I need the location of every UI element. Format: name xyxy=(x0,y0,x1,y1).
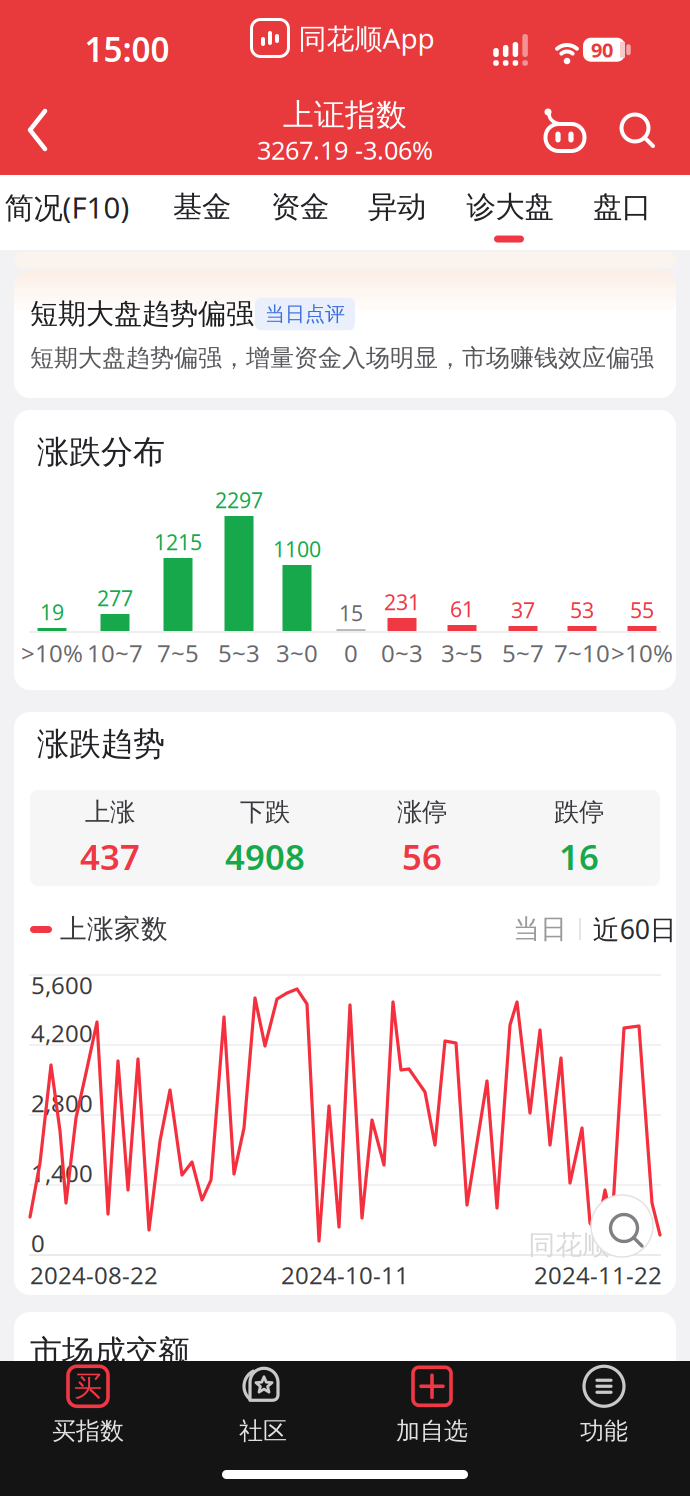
staticText: >10% xyxy=(611,637,673,669)
staticText: 53 xyxy=(570,596,594,624)
staticText: >10% xyxy=(21,637,83,669)
staticText: 7~5 xyxy=(157,637,199,669)
button[interactable]: 功能 xyxy=(572,1364,636,1446)
staticText: 1,400 xyxy=(31,1157,93,1189)
staticText: 同花顺App xyxy=(298,19,434,57)
staticText: 下跌 xyxy=(240,796,290,827)
staticText: 437 xyxy=(80,833,140,879)
staticText: 2297 xyxy=(215,486,263,514)
staticText: 90 xyxy=(591,36,613,63)
staticText: 上涨 xyxy=(85,796,135,827)
staticText: 近60日 xyxy=(593,911,677,947)
button[interactable]: 盘口 xyxy=(593,175,651,239)
staticText: 15 xyxy=(339,599,363,627)
staticText: 10~7 xyxy=(87,637,143,669)
button[interactable] xyxy=(619,112,657,150)
staticText: 2,800 xyxy=(31,1087,93,1119)
staticText: 加自选 xyxy=(396,1416,468,1446)
button[interactable]: 基金 xyxy=(173,175,231,239)
staticText: 61 xyxy=(450,595,474,623)
staticText: 1215 xyxy=(154,528,202,556)
button[interactable] xyxy=(539,107,591,155)
staticText: 4,200 xyxy=(31,1017,93,1049)
button[interactable]: 当日点评 xyxy=(255,298,355,330)
button[interactable]: 买 xyxy=(44,1364,132,1446)
staticText: 19 xyxy=(40,598,64,626)
button[interactable]: 加自选 xyxy=(388,1364,476,1446)
staticText: 5,600 xyxy=(31,969,93,1001)
staticText: 当日点评 xyxy=(265,302,345,326)
staticText: 买 xyxy=(74,1369,102,1403)
staticText: 277 xyxy=(97,584,133,612)
staticText: 买指数 xyxy=(52,1416,124,1446)
button[interactable]: 诊大盘 xyxy=(466,175,553,239)
button[interactable]: 社区 xyxy=(231,1364,295,1446)
staticText: 基金 xyxy=(173,189,231,225)
staticText: 资金 xyxy=(271,189,329,225)
staticText: 2024-10-11 xyxy=(281,1259,409,1291)
staticText: 上证指数 xyxy=(283,96,407,134)
staticText: 社区 xyxy=(239,1416,287,1446)
button[interactable]: 简况(F10) xyxy=(4,173,129,240)
button[interactable]: 当日 xyxy=(513,911,677,947)
staticText: 37 xyxy=(511,596,535,624)
staticText: 5~3 xyxy=(218,637,260,669)
staticText: 0 xyxy=(344,637,358,669)
staticText: 4908 xyxy=(225,833,305,879)
staticText: 0~3 xyxy=(381,637,423,669)
staticText: 3~5 xyxy=(441,637,483,669)
button[interactable]: 同花顺App xyxy=(251,19,434,57)
staticText: 2024-08-22 xyxy=(30,1259,158,1291)
staticText: 诊大盘 xyxy=(466,189,553,225)
button[interactable] xyxy=(28,109,48,151)
staticText: 市场成交额 xyxy=(30,1332,190,1372)
staticText: 16 xyxy=(559,833,599,879)
staticText: 涨跌趋势 xyxy=(37,724,165,764)
staticText: 简况(F10) xyxy=(4,187,129,226)
staticText: 涨停 xyxy=(397,796,447,827)
staticText: 1100 xyxy=(273,535,321,563)
staticText: 3267.19 -3.06% xyxy=(257,133,433,167)
staticText: 0 xyxy=(31,1227,45,1259)
button[interactable] xyxy=(591,1195,653,1257)
staticText: 异动 xyxy=(368,189,426,225)
staticText: 15:00 xyxy=(84,27,169,71)
staticText: 当日 xyxy=(513,913,567,945)
staticText: 跌停 xyxy=(554,796,604,827)
staticText: 短期大盘趋势偏强，增量资金入场明显，市场赚钱效应偏强 xyxy=(30,343,654,373)
staticText: 7~10 xyxy=(554,637,610,669)
button[interactable]: 资金 xyxy=(271,175,329,239)
staticText: 同花顺 xyxy=(528,1229,609,1261)
staticText: 2024-11-22 xyxy=(534,1259,662,1291)
staticText: 5~7 xyxy=(502,637,544,669)
staticText: 涨跌分布 xyxy=(37,432,165,472)
staticText: 短期大盘趋势偏强 xyxy=(30,297,254,331)
staticText: 3~0 xyxy=(276,637,318,669)
staticText: 56 xyxy=(402,833,442,879)
staticText: 55 xyxy=(630,596,654,624)
staticText: 231 xyxy=(384,588,420,616)
button[interactable]: 异动 xyxy=(368,175,426,239)
staticText: 盘口 xyxy=(593,189,651,225)
staticText: 上涨家数 xyxy=(60,913,168,945)
staticText: 功能 xyxy=(580,1416,628,1446)
